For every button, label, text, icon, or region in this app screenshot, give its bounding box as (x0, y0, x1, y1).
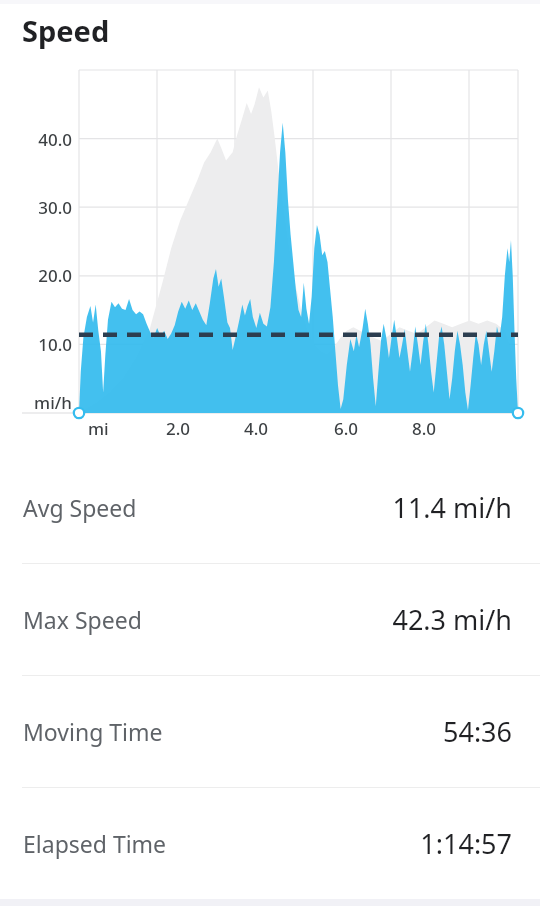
staticText: Speed (22, 11, 110, 50)
button[interactable]: Elapsed Time (0, 788, 540, 899)
button[interactable]: Avg Speed (0, 452, 540, 563)
staticText: mi (88, 417, 109, 440)
staticText: Elapsed Time (23, 828, 167, 859)
staticText: Moving Time (23, 716, 163, 747)
staticText: mi/h (34, 391, 72, 414)
staticText: 20.0 (38, 264, 72, 287)
staticText: 2.0 (166, 417, 191, 440)
staticText: 10.0 (38, 333, 72, 356)
staticText: 4.0 (244, 417, 269, 440)
staticText: 8.0 (412, 417, 437, 440)
staticText: Avg Speed (23, 492, 137, 523)
staticText: 54:36 (442, 713, 512, 750)
button[interactable]: Moving Time (0, 676, 540, 787)
staticText: 6.0 (334, 417, 359, 440)
staticText: 42.3 mi/h (392, 601, 512, 638)
staticText: 1:14:57 (420, 825, 512, 862)
button[interactable]: Max Speed (0, 564, 540, 675)
staticText: 40.0 (38, 128, 72, 151)
staticText: 30.0 (38, 196, 72, 219)
staticText: Max Speed (23, 604, 142, 635)
staticText: 11.4 mi/h (392, 489, 512, 526)
